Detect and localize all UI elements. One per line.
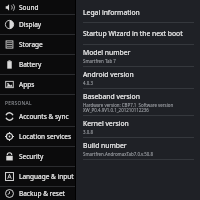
other: Sound bbox=[5, 3, 14, 12]
button[interactable]: Legal information bbox=[76, 3, 200, 22]
button[interactable]: Language and input bbox=[0, 167, 76, 186]
staticText: Model number bbox=[83, 48, 131, 57]
other: Display bbox=[5, 20, 14, 29]
other: Language and input bbox=[5, 172, 14, 181]
button[interactable]: Security bbox=[0, 147, 76, 166]
staticText: Accounts & sync bbox=[19, 112, 69, 121]
other: Security bbox=[5, 152, 14, 161]
other: Battery bbox=[5, 60, 14, 69]
staticText: Build number bbox=[83, 141, 127, 150]
other: Storage bbox=[5, 40, 14, 49]
staticText: Sound bbox=[19, 3, 39, 12]
button[interactable]: Kernel version bbox=[76, 116, 200, 137]
other: Apps bbox=[5, 80, 14, 89]
staticText: Baseband version bbox=[83, 92, 140, 101]
staticText: Storage bbox=[19, 40, 43, 49]
staticText: Backup & reset bbox=[19, 189, 65, 198]
button[interactable]: Battery bbox=[0, 55, 76, 74]
button[interactable]: Startup Wizard in the next boot bbox=[76, 23, 200, 44]
staticText: Language & input bbox=[19, 172, 74, 181]
button[interactable]: Location services bbox=[0, 127, 76, 146]
staticText: Battery bbox=[19, 60, 42, 69]
staticText: Startup Wizard in the next boot bbox=[83, 29, 183, 38]
button[interactable]: Sound bbox=[0, 0, 76, 14]
button[interactable]: Accounts and sync bbox=[0, 107, 76, 126]
other: Location services bbox=[5, 132, 14, 141]
button[interactable]: Backup and reset bbox=[0, 187, 76, 200]
staticText: Smartfren Tab 7 bbox=[83, 58, 116, 64]
button[interactable]: Storage bbox=[0, 35, 76, 54]
button[interactable]: Baseband version bbox=[76, 89, 200, 115]
other: Backup and reset bbox=[5, 189, 14, 198]
button[interactable]: Display bbox=[0, 15, 76, 34]
staticText: Location services bbox=[19, 132, 72, 141]
staticText: 4.0.3 bbox=[83, 80, 93, 86]
button[interactable]: Build number bbox=[76, 138, 200, 159]
button[interactable]: Apps bbox=[0, 75, 76, 94]
staticText: Apps bbox=[19, 80, 35, 89]
staticText: Kernel version bbox=[83, 119, 129, 128]
other: Accounts and sync bbox=[5, 112, 14, 121]
staticText: Display bbox=[19, 20, 42, 29]
staticText: 3.0.8 bbox=[83, 129, 93, 135]
staticText: Android version bbox=[83, 70, 134, 79]
staticText: Legal information bbox=[83, 8, 140, 17]
staticText: Security bbox=[19, 152, 44, 161]
staticText: Smartfren.AndromaxTab7.0.v.50.8 bbox=[83, 151, 154, 157]
button[interactable]: Android version bbox=[76, 67, 200, 88]
staticText: Hardware version: CBP7.1 Software versio… bbox=[83, 102, 174, 113]
button[interactable]: Model number bbox=[76, 45, 200, 66]
staticText: PERSONAL bbox=[5, 100, 32, 107]
